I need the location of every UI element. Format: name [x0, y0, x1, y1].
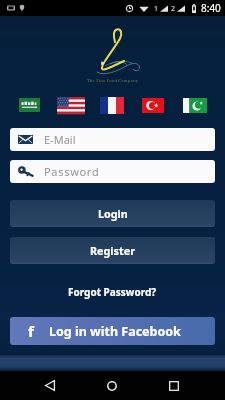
button[interactable]: Back	[33, 371, 66, 400]
button[interactable]: Turkey	[142, 98, 164, 113]
staticText: Log in with Facebook	[49, 323, 181, 340]
button[interactable]: United States	[57, 97, 85, 114]
staticText: E-Mail	[44, 132, 76, 147]
staticText: 2	[171, 4, 176, 13]
staticText: f	[28, 321, 34, 341]
button[interactable]: Password	[10, 160, 215, 183]
staticText: Password	[44, 164, 100, 179]
button[interactable]: Forgot Password?	[0, 283, 225, 301]
button[interactable]: E-Mail	[10, 128, 215, 151]
button[interactable]: Pakistan	[183, 98, 207, 113]
staticText: 8:40	[201, 1, 221, 15]
button[interactable]: Login	[10, 200, 215, 227]
staticText: Register	[90, 243, 135, 258]
button[interactable]: France	[100, 97, 124, 114]
staticText: 1	[154, 4, 159, 13]
staticText: Login	[98, 206, 128, 221]
button[interactable]: Recent apps	[157, 371, 190, 400]
button[interactable]: f	[10, 317, 215, 345]
button[interactable]: Saudi Arabia	[19, 98, 40, 112]
staticText: Forgot Password?	[68, 285, 157, 299]
staticText: The Fine Food Company	[87, 78, 139, 84]
button[interactable]: Register	[10, 237, 215, 264]
button[interactable]: Home	[95, 371, 128, 400]
